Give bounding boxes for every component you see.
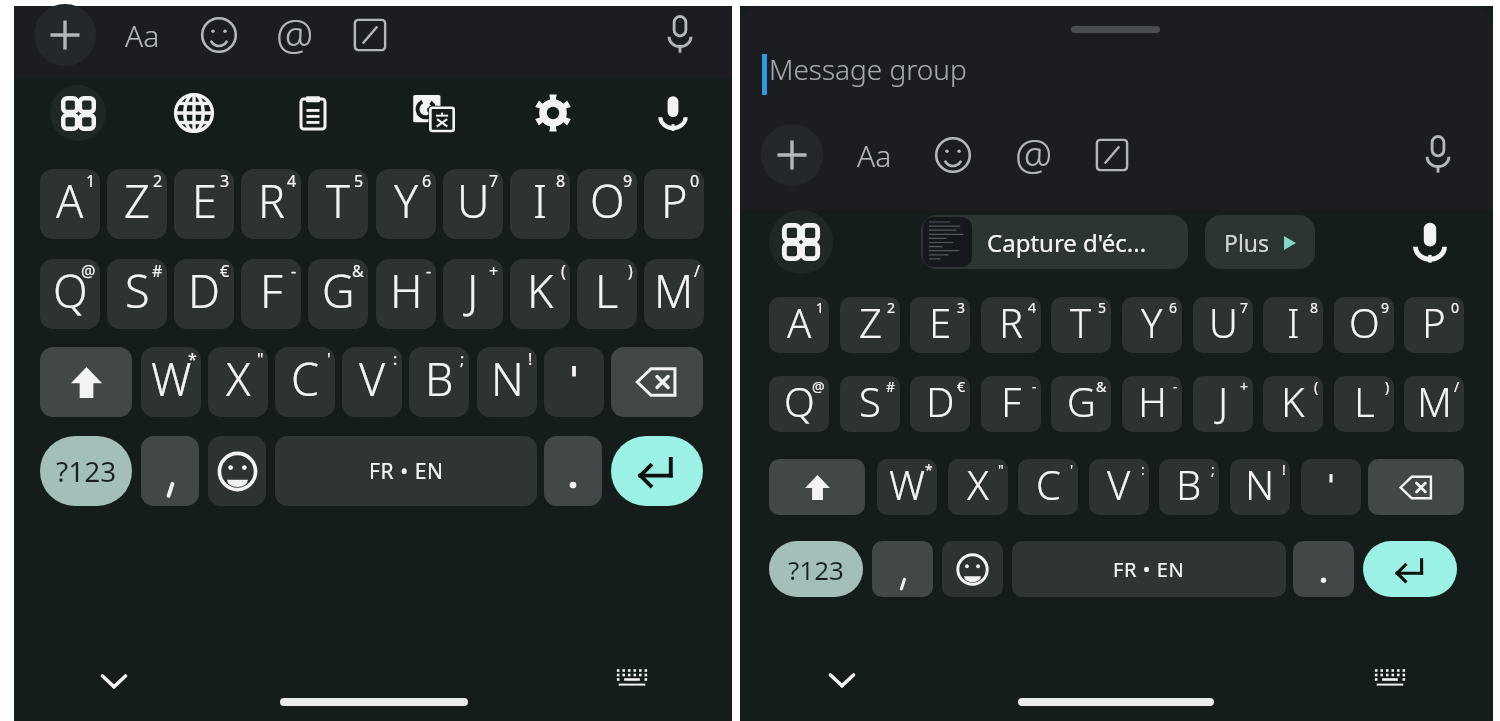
button[interactable]: Symbols [40,436,132,506]
button[interactable]: Z [840,297,900,353]
button[interactable]: M [1404,376,1464,432]
button[interactable]: Period [1293,541,1354,597]
button[interactable]: Mention [270,10,320,60]
button[interactable]: Command [1091,134,1133,176]
button[interactable]: C [1018,459,1078,515]
button[interactable]: S [107,259,167,329]
button[interactable]: Apps [50,85,106,141]
button[interactable]: N [1230,459,1290,515]
button[interactable]: L [577,259,637,329]
button[interactable]: Q [40,259,100,329]
button[interactable]: F [241,259,301,329]
button[interactable]: Z [107,169,167,239]
button[interactable]: Period [544,436,602,506]
button[interactable]: W [877,459,937,515]
button[interactable]: B [409,347,469,417]
button[interactable]: Comma [872,541,933,597]
button[interactable]: Y [376,169,436,239]
button[interactable]: Voice input [653,93,693,133]
button[interactable]: Enter [611,436,703,506]
button[interactable]: D [910,376,970,432]
button[interactable]: Add attachment [34,4,96,66]
button[interactable]: Emoji [198,14,240,56]
button[interactable]: Backspace [611,347,703,417]
button[interactable]: T [1051,297,1111,353]
button[interactable]: Plus [1205,215,1315,269]
button[interactable]: U [1193,297,1253,353]
button[interactable]: Q [769,376,829,432]
button[interactable]: F [981,376,1041,432]
button[interactable]: E [174,169,234,239]
button[interactable]: Text format [848,129,900,181]
button[interactable]: Text format [116,9,168,61]
button[interactable]: P [1404,297,1464,353]
button[interactable]: M [644,259,704,329]
button[interactable]: Shift [40,347,132,417]
button[interactable]: G [308,259,368,329]
button[interactable]: O [577,169,637,239]
button[interactable]: V [1089,459,1149,515]
button[interactable]: Apostrophe [1301,459,1361,515]
button[interactable]: Comma [141,436,199,506]
button[interactable]: Emoji [942,541,1003,597]
button[interactable]: O [1334,297,1394,353]
button[interactable]: Symbols [769,541,863,597]
button[interactable]: Add attachment [761,124,823,186]
button[interactable]: Space [275,436,537,506]
button[interactable]: Hide keyboard [824,662,860,698]
button[interactable]: K [510,259,570,329]
button[interactable]: A [769,297,829,353]
button[interactable]: J [443,259,503,329]
button[interactable]: X [948,459,1008,515]
button[interactable]: Voice input [1407,219,1453,265]
button[interactable]: Enter [1363,541,1457,597]
button[interactable]: Emoji [208,436,266,506]
button[interactable]: Translate [411,91,455,135]
button[interactable]: Emoji [932,134,974,176]
button[interactable]: Command [349,14,391,56]
button[interactable]: A [40,169,100,239]
button[interactable]: R [241,169,301,239]
button[interactable]: Switch keyboard [614,662,650,698]
button[interactable]: I [510,169,570,239]
button[interactable]: Settings [533,93,573,133]
button[interactable]: V [342,347,402,417]
button[interactable]: H [376,259,436,329]
button[interactable]: Backspace [1368,459,1464,515]
button[interactable]: J [1193,376,1253,432]
button[interactable]: P [644,169,704,239]
button[interactable]: Shift [769,459,865,515]
button[interactable]: Switch keyboard [1372,662,1408,698]
button[interactable]: R [981,297,1041,353]
button[interactable]: Mention [1009,130,1059,180]
button[interactable]: C [275,347,335,417]
button[interactable]: W [141,347,201,417]
staticText: 4 [287,170,297,192]
staticText: X [967,459,989,511]
button[interactable]: Voice message [659,14,701,56]
button[interactable]: Y [1122,297,1182,353]
button[interactable]: T [308,169,368,239]
button[interactable]: Space [1012,541,1286,597]
button[interactable]: D [174,259,234,329]
button[interactable]: Change language [174,93,214,133]
button[interactable]: Capture d'éc... [921,215,1188,269]
button[interactable]: Voice message [1417,134,1459,176]
staticText: T [326,170,350,231]
button[interactable]: S [840,376,900,432]
button[interactable]: X [208,347,268,417]
button[interactable]: Clipboard [293,93,333,133]
button[interactable]: Hide keyboard [96,663,132,699]
button[interactable]: L [1334,376,1394,432]
button[interactable]: E [910,297,970,353]
button[interactable]: H [1122,376,1182,432]
button[interactable]: Apostrophe [544,347,604,417]
button[interactable]: I [1263,297,1323,353]
button[interactable]: B [1159,459,1219,515]
button[interactable]: N [477,347,537,417]
button[interactable]: U [443,169,503,239]
button[interactable]: K [1263,376,1323,432]
button[interactable]: G [1051,376,1111,432]
button[interactable]: Apps [769,210,833,274]
staticText: FR • EN [1113,556,1185,583]
